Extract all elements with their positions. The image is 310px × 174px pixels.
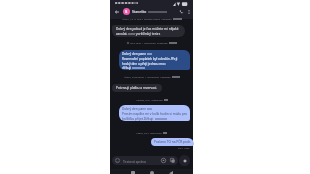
button[interactable]: Home xyxy=(148,169,156,174)
staticText: holčičku přijet.Děkuji xyxy=(122,117,155,121)
staticText: děkuji xyxy=(122,66,132,70)
staticText: 9:41 SMS xyxy=(178,146,190,149)
button[interactable]: Poslano TO na PČR podr. xyxy=(151,138,194,146)
staticText: Dobrý den pane xyxy=(122,52,147,56)
staticText: Středa, 9:41 Odesláno xyxy=(136,98,163,101)
staticText: Poslano TO na PČR podr. xyxy=(154,140,191,144)
staticText: S xyxy=(125,9,128,15)
button[interactable]: Textová zpráva xyxy=(112,156,178,165)
button[interactable]: Back xyxy=(167,169,175,174)
button[interactable]: Dobrý den,pokud je čas můžete mi nějaké xyxy=(112,25,185,37)
staticText: zavolat. xyxy=(116,32,128,36)
staticText: Úterý, SMS/MMS • Doručeno Stanetko xyxy=(124,75,171,78)
staticText: hezký den a přeji jednou moc xyxy=(122,62,166,66)
button[interactable]: Call xyxy=(177,8,185,16)
button[interactable]: Dobrý den pane xyxy=(119,50,190,70)
button[interactable]: Dobrý den pane xyxy=(119,105,190,121)
button[interactable]: More actions xyxy=(179,155,190,166)
staticText: Rezervační poplatek byl odeslán.Přeji xyxy=(122,57,178,61)
button[interactable]: Gallery xyxy=(169,156,176,165)
staticText: Textová zpráva xyxy=(123,159,146,163)
button[interactable]: Back xyxy=(113,8,120,15)
staticText: Dobrý den pane xyxy=(122,107,147,111)
staticText: yorkšírský terier. xyxy=(135,32,161,36)
staticText: Prosím napište mi v kolik hodin si můžu … xyxy=(122,112,188,116)
staticText: Potvrzuji platbu a rezervaci. xyxy=(116,86,158,90)
button[interactable]: More options xyxy=(185,8,192,15)
staticText: Stanetko xyxy=(132,9,147,14)
staticText: Dobrý den,pokud je čas můžete mi nějaké xyxy=(116,27,179,31)
staticText: RCS chat • Doručeno Stanetko xyxy=(130,41,168,44)
button[interactable]: Potvrzuji platbu a rezervaci. xyxy=(112,84,162,92)
button[interactable]: Stickers xyxy=(160,156,167,165)
staticText: Úterý, 19. 6. 2024 pondělí pátek Stanetk… xyxy=(122,17,172,20)
button[interactable]: Recents xyxy=(129,169,137,174)
staticText: Včera, 9:41 Doručeno xyxy=(136,131,162,134)
